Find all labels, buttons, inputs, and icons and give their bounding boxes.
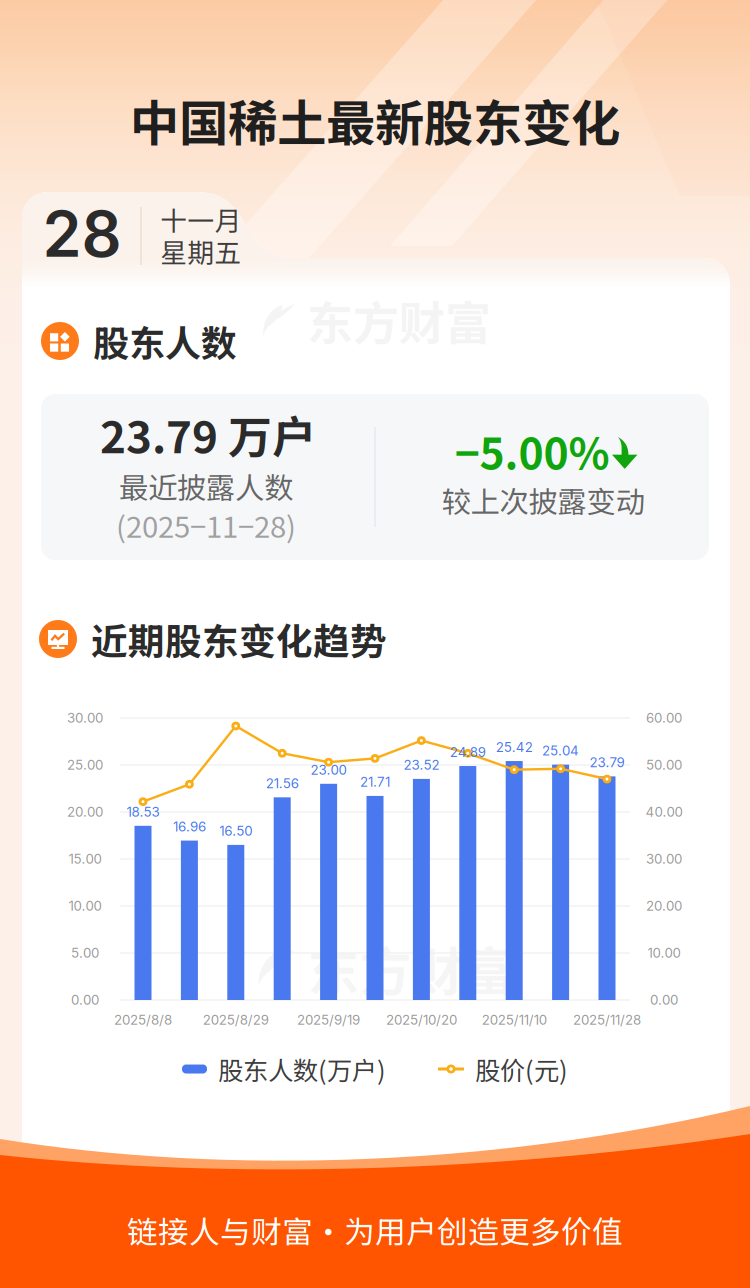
staticText: −5.00% <box>454 420 609 482</box>
staticText: 30.00 <box>646 851 682 867</box>
staticText: 0.00 <box>71 992 99 1008</box>
staticText: 2025/8/8 <box>114 1012 172 1028</box>
staticText: 25.42 <box>496 739 533 755</box>
staticText: 中国稀土最新股东变化 <box>130 84 620 156</box>
staticText: 股价(元) <box>475 1051 568 1087</box>
staticText: 25.00 <box>67 757 103 773</box>
staticText: 10.00 <box>647 945 680 961</box>
staticText: 10.00 <box>68 898 101 914</box>
staticText: 星期五 <box>160 232 241 270</box>
staticText: 5.00 <box>71 945 99 961</box>
staticText: 21.71 <box>360 774 390 790</box>
staticText: 24.89 <box>450 744 486 760</box>
staticText: 23.52 <box>403 757 439 773</box>
staticText: 股东人数(万户) <box>218 1051 386 1087</box>
staticText: 18.53 <box>126 804 159 820</box>
staticText: 链接人与财富·为用户创造更多价值 <box>127 1208 623 1252</box>
staticText: 十一月 <box>160 200 241 238</box>
staticText: 2025/10/20 <box>386 1012 457 1028</box>
staticText: 30.00 <box>67 710 103 726</box>
staticText: 东方财富 <box>307 286 491 353</box>
staticText: 21.56 <box>266 775 299 791</box>
staticText: 20.00 <box>646 898 682 914</box>
staticText: 23.00 <box>311 762 347 778</box>
staticText: 23.79 万户 <box>100 402 316 466</box>
staticText: 最近披露人数 <box>119 465 293 507</box>
staticText: 2025/11/10 <box>482 1012 547 1028</box>
staticText: 15.00 <box>68 851 101 867</box>
staticText: (2025−11−28) <box>116 504 296 546</box>
staticText: 16.50 <box>219 823 252 839</box>
staticText: 40.00 <box>645 804 682 820</box>
staticText: 近期股东变化趋势 <box>91 612 387 666</box>
staticText: 50.00 <box>646 757 682 773</box>
staticText: 东方财富 <box>307 931 515 1005</box>
staticText: 16.96 <box>173 818 206 835</box>
staticText: 25.04 <box>542 743 579 759</box>
staticText: 60.00 <box>646 710 682 726</box>
staticText: 28 <box>42 196 121 272</box>
staticText: 较上次披露变动 <box>441 479 644 521</box>
staticText: 20.00 <box>67 804 103 820</box>
staticText: 0.00 <box>650 992 678 1008</box>
staticText: 2025/8/29 <box>203 1012 269 1028</box>
staticText: 2025/9/19 <box>297 1012 360 1028</box>
staticText: 23.79 <box>589 754 624 770</box>
staticText: 2025/11/28 <box>573 1012 641 1028</box>
staticText: 股东人数 <box>93 315 237 367</box>
